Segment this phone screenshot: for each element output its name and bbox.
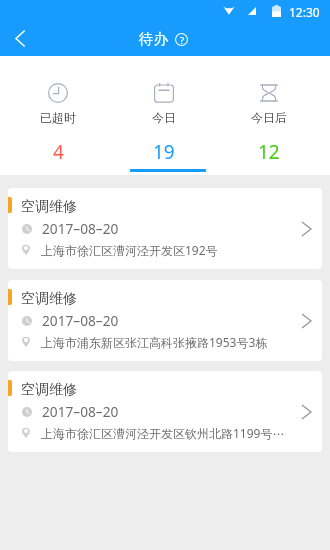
button[interactable]: Back: [2, 20, 38, 56]
staticText: 19: [153, 139, 175, 165]
staticText: 空调维修: [21, 198, 77, 216]
button[interactable]: 空调维修: [8, 188, 322, 269]
button[interactable]: 空调维修: [8, 371, 322, 452]
button[interactable]: Help: [172, 30, 191, 49]
staticText: 空调维修: [21, 381, 77, 399]
button[interactable]: 空调维修: [8, 280, 322, 361]
staticText: 已超时: [40, 110, 76, 125]
staticText: 12:30: [289, 4, 320, 20]
staticText: 12: [258, 139, 280, 165]
staticText: 2017–08–20: [42, 402, 119, 421]
button[interactable]: 今日后: [216, 56, 321, 175]
staticText: 上海市徐汇区漕河泾开发区192号: [41, 242, 292, 258]
staticText: 今日: [152, 110, 176, 125]
button[interactable]: 今日: [111, 56, 216, 175]
staticText: 上海市浦东新区张江高科张掖路1953号3栋: [41, 334, 292, 350]
button[interactable]: 已超时: [5, 56, 111, 175]
staticText: 待办: [139, 30, 168, 48]
staticText: 今日后: [251, 110, 287, 125]
staticText: 2017–08–20: [42, 311, 119, 330]
staticText: ?: [180, 34, 184, 46]
staticText: 2017–08–20: [42, 219, 119, 238]
staticText: 4: [53, 139, 64, 165]
staticText: 空调维修: [21, 290, 77, 308]
staticText: 上海市徐汇区漕河泾开发区钦州北路1199号漕河泾开发区: [41, 425, 292, 441]
